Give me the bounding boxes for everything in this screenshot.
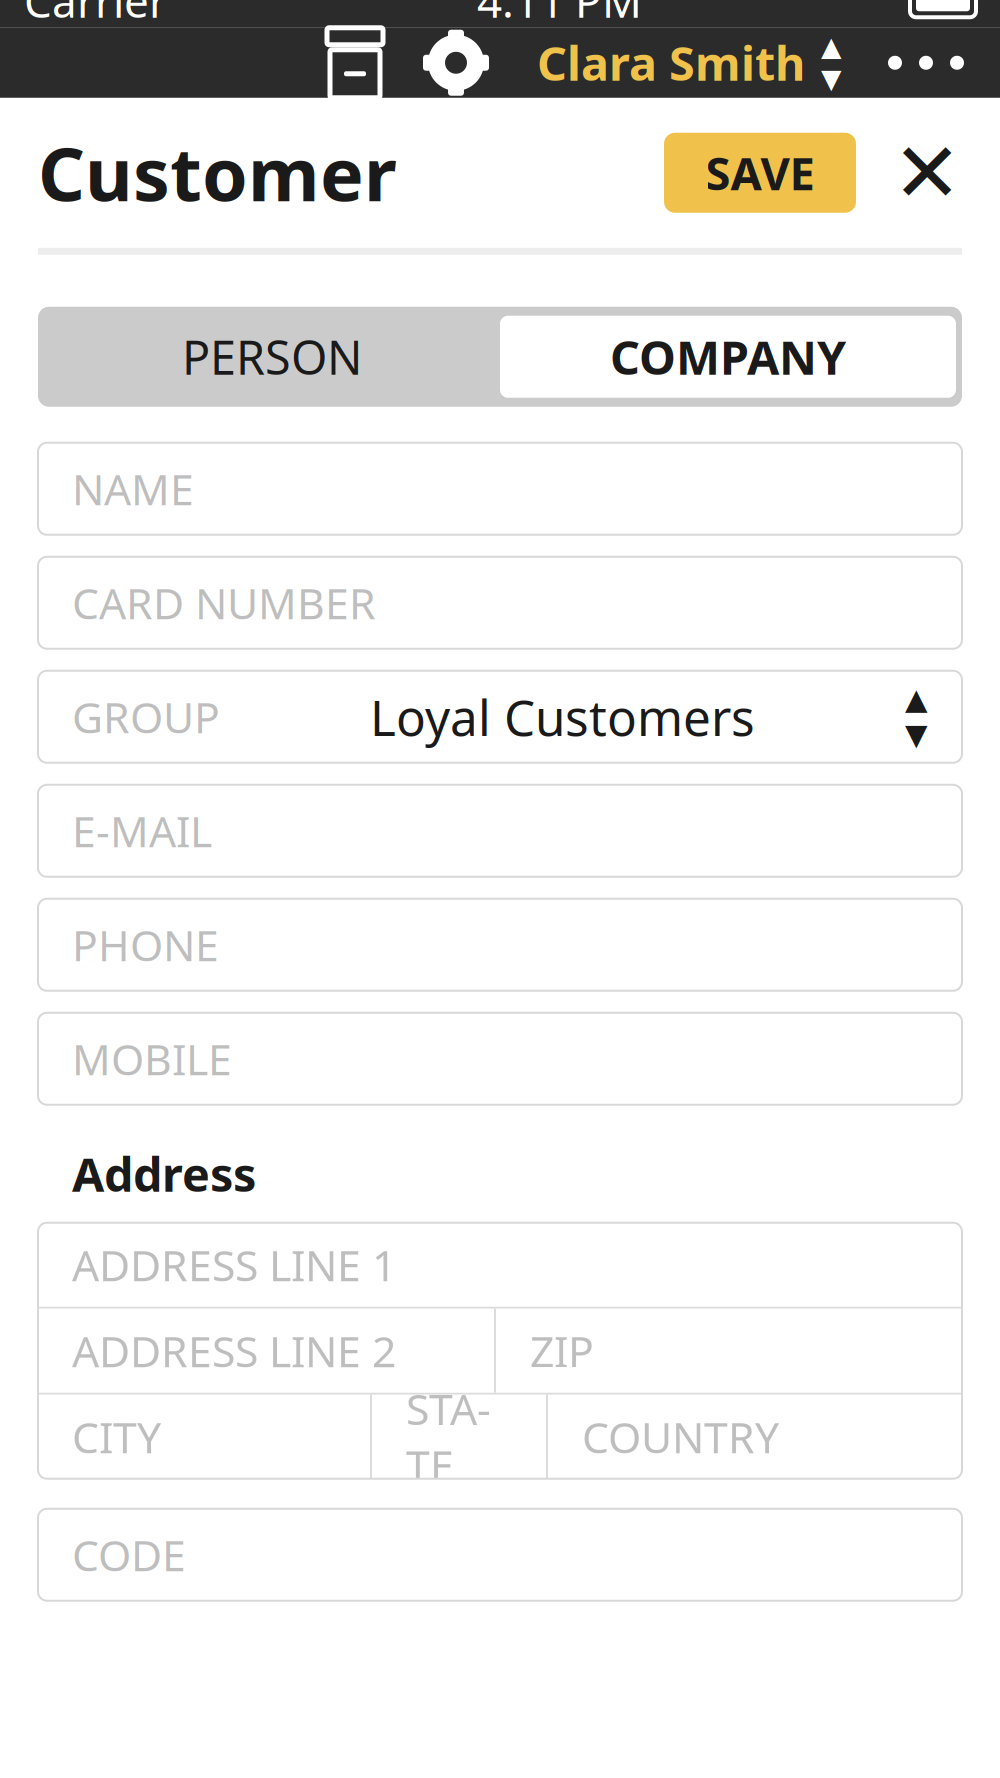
staticText: ZIP — [530, 1322, 594, 1379]
staticText: CODE — [72, 1526, 186, 1583]
staticText: COMPANY — [610, 326, 846, 388]
button[interactable]: CODE — [38, 1509, 962, 1601]
staticText: ▲ — [905, 682, 928, 716]
staticText: PERSON — [182, 326, 362, 388]
staticText: CARD NUMBER — [72, 574, 376, 631]
button[interactable]: CARD NUMBER — [38, 557, 962, 649]
staticText: ▼ — [821, 64, 842, 94]
button[interactable]: Close — [892, 138, 962, 208]
button[interactable]: NAME — [38, 443, 962, 535]
button[interactable]: CITY — [38, 1395, 370, 1479]
staticText: SAVE — [705, 143, 814, 203]
button[interactable]: COMPANY — [500, 316, 956, 398]
button[interactable]: STATE — [372, 1395, 546, 1479]
button[interactable]: E-MAIL — [38, 785, 962, 877]
button[interactable]: Archive — [325, 25, 385, 101]
button[interactable]: ADDRESS LINE 2 — [38, 1309, 494, 1393]
button[interactable]: ADDRESS LINE 1 — [38, 1223, 962, 1307]
button[interactable]: ZIP — [496, 1309, 962, 1393]
staticText: Clara Smith — [537, 32, 805, 94]
staticText: E-MAIL — [72, 802, 212, 859]
staticText: Address — [72, 1143, 256, 1205]
button[interactable]: Clara Smith — [537, 31, 842, 94]
staticText: COUNTRY — [582, 1408, 779, 1465]
staticText: ▲ — [821, 31, 842, 62]
button[interactable]: PERSON — [44, 313, 500, 401]
staticText: Carrier — [24, 0, 167, 30]
button[interactable]: MOBILE — [38, 1013, 962, 1105]
staticText: ADDRESS LINE 1 — [72, 1236, 396, 1293]
button[interactable]: PHONE — [38, 899, 962, 991]
staticText: MOBILE — [72, 1030, 232, 1087]
staticText: Customer — [38, 124, 397, 221]
staticText: NAME — [72, 460, 194, 517]
staticText: STATE — [406, 1380, 491, 1493]
staticText: 4:11 PM — [477, 0, 642, 30]
staticText: Loyal Customers — [370, 684, 755, 749]
staticText: GROUP — [72, 688, 220, 745]
staticText: ▼ — [905, 718, 928, 751]
staticText: ADDRESS LINE 2 — [72, 1322, 396, 1379]
staticText: CITY — [72, 1408, 161, 1465]
staticText: ✕ — [892, 126, 961, 220]
button[interactable]: SAVE — [664, 133, 856, 213]
button[interactable]: More options — [872, 32, 980, 94]
button[interactable]: COUNTRY — [548, 1395, 962, 1479]
button[interactable]: GROUP — [38, 671, 962, 763]
staticText: PHONE — [72, 916, 219, 973]
button[interactable]: Settings — [421, 28, 491, 98]
